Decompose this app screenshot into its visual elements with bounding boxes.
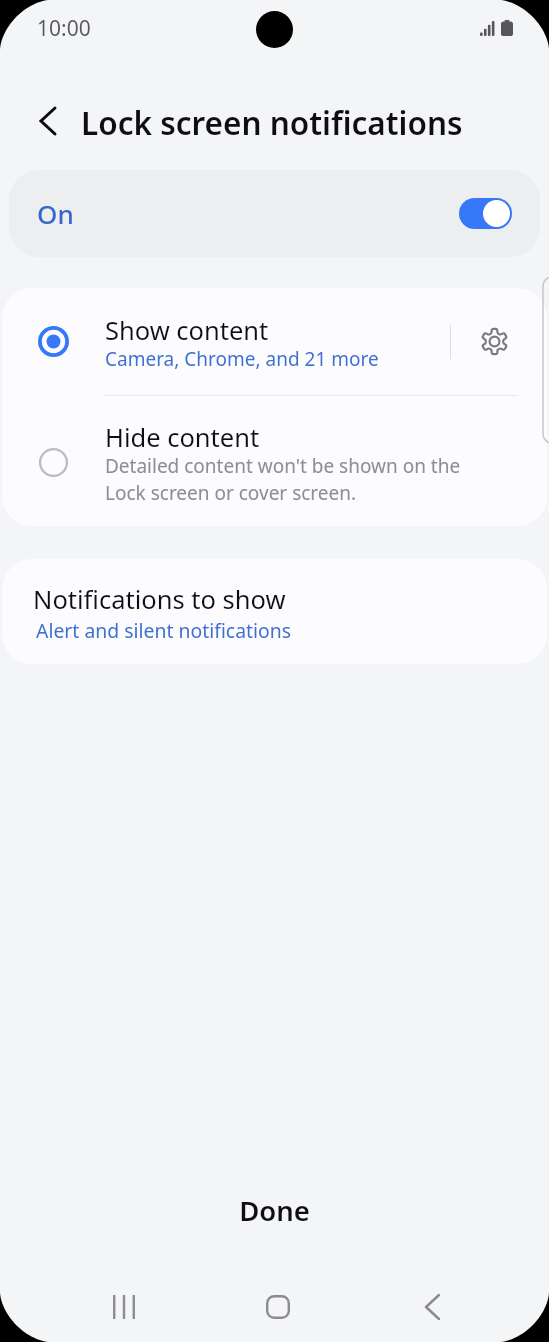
button[interactable]: On	[9, 170, 540, 257]
button[interactable]: Show content settings	[451, 288, 547, 395]
button[interactable]: Home	[228, 1276, 328, 1342]
staticText: Alert and silent notifications	[36, 617, 292, 643]
button[interactable]: Recents	[74, 1276, 174, 1342]
button[interactable]: Back	[25, 98, 71, 144]
button[interactable]: Done	[0, 1166, 549, 1254]
staticText: Camera, Chrome, and 21 more	[105, 346, 379, 372]
staticText: Detailed content won't be shown on the L…	[105, 453, 477, 505]
button[interactable]: Show content	[2, 288, 450, 395]
button[interactable]: Toggle lock screen notifications	[459, 198, 512, 229]
staticText: Hide content	[105, 420, 260, 455]
staticText: Show content	[105, 313, 269, 348]
button[interactable]: Notifications to show	[2, 559, 547, 664]
staticText: Notifications to show	[33, 582, 286, 617]
staticText: Done	[239, 1192, 310, 1229]
button[interactable]: Hide content	[2, 396, 547, 526]
staticText: On	[37, 196, 74, 231]
button[interactable]: Back	[382, 1276, 482, 1342]
staticText: Lock screen notifications	[81, 101, 463, 144]
staticText: 10:00	[37, 14, 91, 43]
